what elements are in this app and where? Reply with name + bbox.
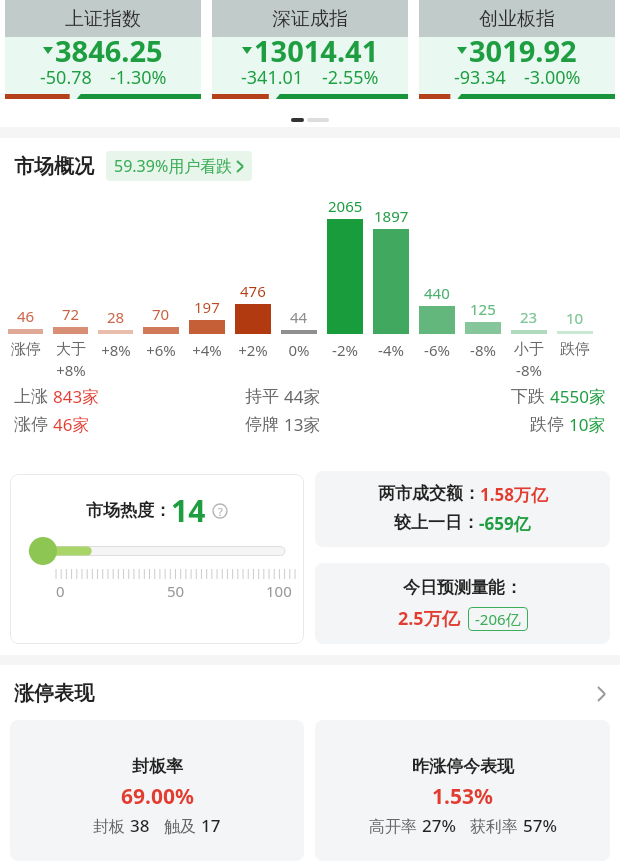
staticText: 2.5万亿: [398, 606, 460, 631]
staticText: 跌停: [530, 414, 564, 435]
staticText: 70: [152, 304, 170, 324]
staticText: 69.00%: [121, 782, 194, 811]
staticText: -93.34: [454, 65, 506, 90]
button[interactable]: 封板率: [10, 720, 304, 861]
button[interactable]: 市场热度：: [10, 474, 304, 644]
staticText: 100: [266, 581, 292, 601]
staticText: 封板: [93, 815, 130, 837]
staticText: -50.78: [40, 65, 92, 90]
staticText: -659亿: [479, 512, 531, 535]
button[interactable]: 上证指数: [5, 0, 201, 99]
staticText: 跌停: [560, 340, 590, 359]
staticText: 上证指数: [65, 7, 141, 31]
staticText: 涨停: [11, 340, 41, 359]
staticText: 上涨: [14, 386, 48, 407]
staticText: 创业板指: [479, 7, 555, 31]
staticText: 2065: [328, 196, 363, 216]
staticText: 下跌: [511, 386, 545, 407]
staticText: 涨停: [14, 414, 48, 435]
staticText: 深证成指: [272, 7, 348, 31]
staticText: 44家: [284, 385, 321, 408]
staticText: 13家: [284, 413, 321, 436]
staticText: 46: [17, 306, 35, 326]
staticText: +2%: [238, 340, 268, 360]
staticText: 28: [107, 307, 125, 327]
staticText: 0: [56, 581, 65, 601]
staticText: -6%: [424, 340, 450, 360]
staticText: 50: [167, 581, 185, 601]
button[interactable]: 今日预测量能：: [315, 563, 610, 644]
staticText: 较上一日：: [394, 512, 479, 533]
staticText: 4550家: [550, 385, 606, 408]
staticText: 市场热度：: [86, 500, 171, 521]
staticText: -4%: [378, 340, 404, 360]
staticText: 封板率: [132, 756, 183, 777]
staticText: 持平: [245, 386, 279, 407]
staticText: ?: [218, 504, 223, 519]
staticText: 获利率: [470, 815, 523, 837]
staticText: 44: [290, 307, 308, 327]
staticText: 59.39%用户看跌: [114, 155, 233, 177]
staticText: 17: [201, 814, 221, 837]
staticText: 1.53%: [432, 782, 493, 811]
staticText: 57%: [523, 814, 557, 837]
button[interactable]: 深证成指: [212, 0, 408, 99]
staticText: 高开率: [369, 815, 422, 837]
staticText: 涨停表现: [14, 681, 94, 706]
staticText: +4%: [192, 340, 222, 360]
staticText: 小于 -8%: [514, 340, 544, 380]
staticText: 440: [424, 283, 450, 303]
staticText: 197: [194, 297, 220, 317]
staticText: 0%: [288, 340, 310, 360]
staticText: 今日预测量能：: [403, 577, 522, 598]
staticText: 23: [520, 307, 538, 327]
staticText: -2%: [332, 340, 358, 360]
staticText: 10: [566, 308, 584, 328]
staticText: -2.55%: [322, 65, 379, 90]
staticText: 3846.25: [55, 31, 163, 70]
staticText: 大于 +8%: [56, 340, 86, 380]
staticText: 1897: [374, 206, 409, 226]
staticText: 两市成交额：: [378, 483, 480, 504]
button[interactable]: 两市成交额：: [315, 471, 610, 547]
staticText: +8%: [101, 340, 131, 360]
staticText: 市场概况: [14, 154, 94, 179]
staticText: 476: [240, 281, 266, 301]
button[interactable]: 59.39%用户看跌: [106, 151, 252, 181]
staticText: 46家: [53, 413, 90, 436]
staticText: 触及: [164, 815, 201, 837]
staticText: -3.00%: [524, 65, 581, 90]
button[interactable]: 涨停表现: [0, 665, 620, 706]
staticText: -206亿: [475, 609, 521, 629]
staticText: 38: [130, 814, 150, 837]
staticText: -8%: [470, 340, 496, 360]
staticText: 停牌: [245, 414, 279, 435]
staticText: 843家: [53, 385, 100, 408]
staticText: 72: [62, 304, 80, 324]
staticText: 14: [171, 490, 206, 531]
staticText: 10家: [569, 413, 606, 436]
staticText: +6%: [146, 340, 176, 360]
staticText: -341.01: [241, 65, 304, 90]
staticText: 3019.92: [469, 31, 577, 70]
staticText: 27%: [422, 814, 456, 837]
staticText: 1.58万亿: [480, 483, 548, 506]
staticText: 昨涨停今表现: [412, 756, 514, 777]
staticText: 125: [470, 299, 496, 319]
staticText: 13014.41: [254, 31, 379, 70]
staticText: -1.30%: [110, 65, 167, 90]
button[interactable]: 昨涨停今表现: [315, 720, 610, 861]
button[interactable]: 创业板指: [419, 0, 615, 99]
